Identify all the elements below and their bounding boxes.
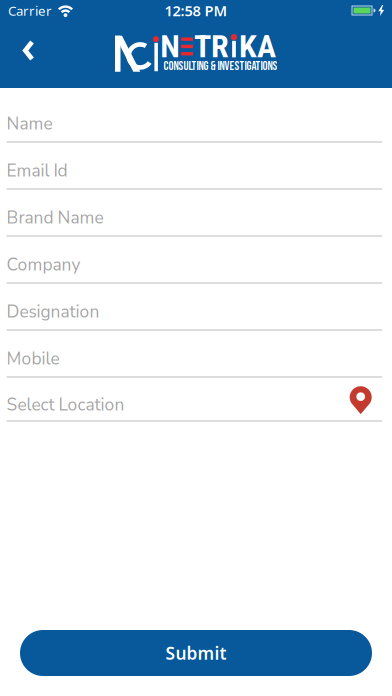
staticText: Select Location <box>6 393 124 417</box>
button[interactable]: Company <box>6 256 382 283</box>
staticText: Name <box>6 112 52 136</box>
staticText: 12:58 PM <box>164 1 227 20</box>
button[interactable]: Back <box>12 31 44 70</box>
button[interactable]: Mobile <box>6 350 382 377</box>
staticText: Brand Name <box>6 206 103 230</box>
staticText: Mobile <box>6 347 59 371</box>
button[interactable]: Select Location <box>6 394 382 421</box>
staticText: N <box>160 28 180 65</box>
button[interactable]: Email Id <box>6 162 382 189</box>
staticText: Submit <box>165 641 226 664</box>
staticText: Designation <box>6 300 99 324</box>
button[interactable]: Submit <box>20 630 372 676</box>
staticText: TR <box>194 28 229 65</box>
staticText: KA <box>239 28 276 65</box>
button[interactable]: Brand Name <box>6 209 382 236</box>
staticText: CONSULTING & INVESTIGATIONS <box>163 59 277 74</box>
button[interactable]: Designation <box>6 303 382 330</box>
staticText: Email Id <box>6 159 67 183</box>
button[interactable]: Name <box>6 115 382 142</box>
staticText: Company <box>6 253 80 277</box>
staticText: Carrier <box>8 2 52 19</box>
